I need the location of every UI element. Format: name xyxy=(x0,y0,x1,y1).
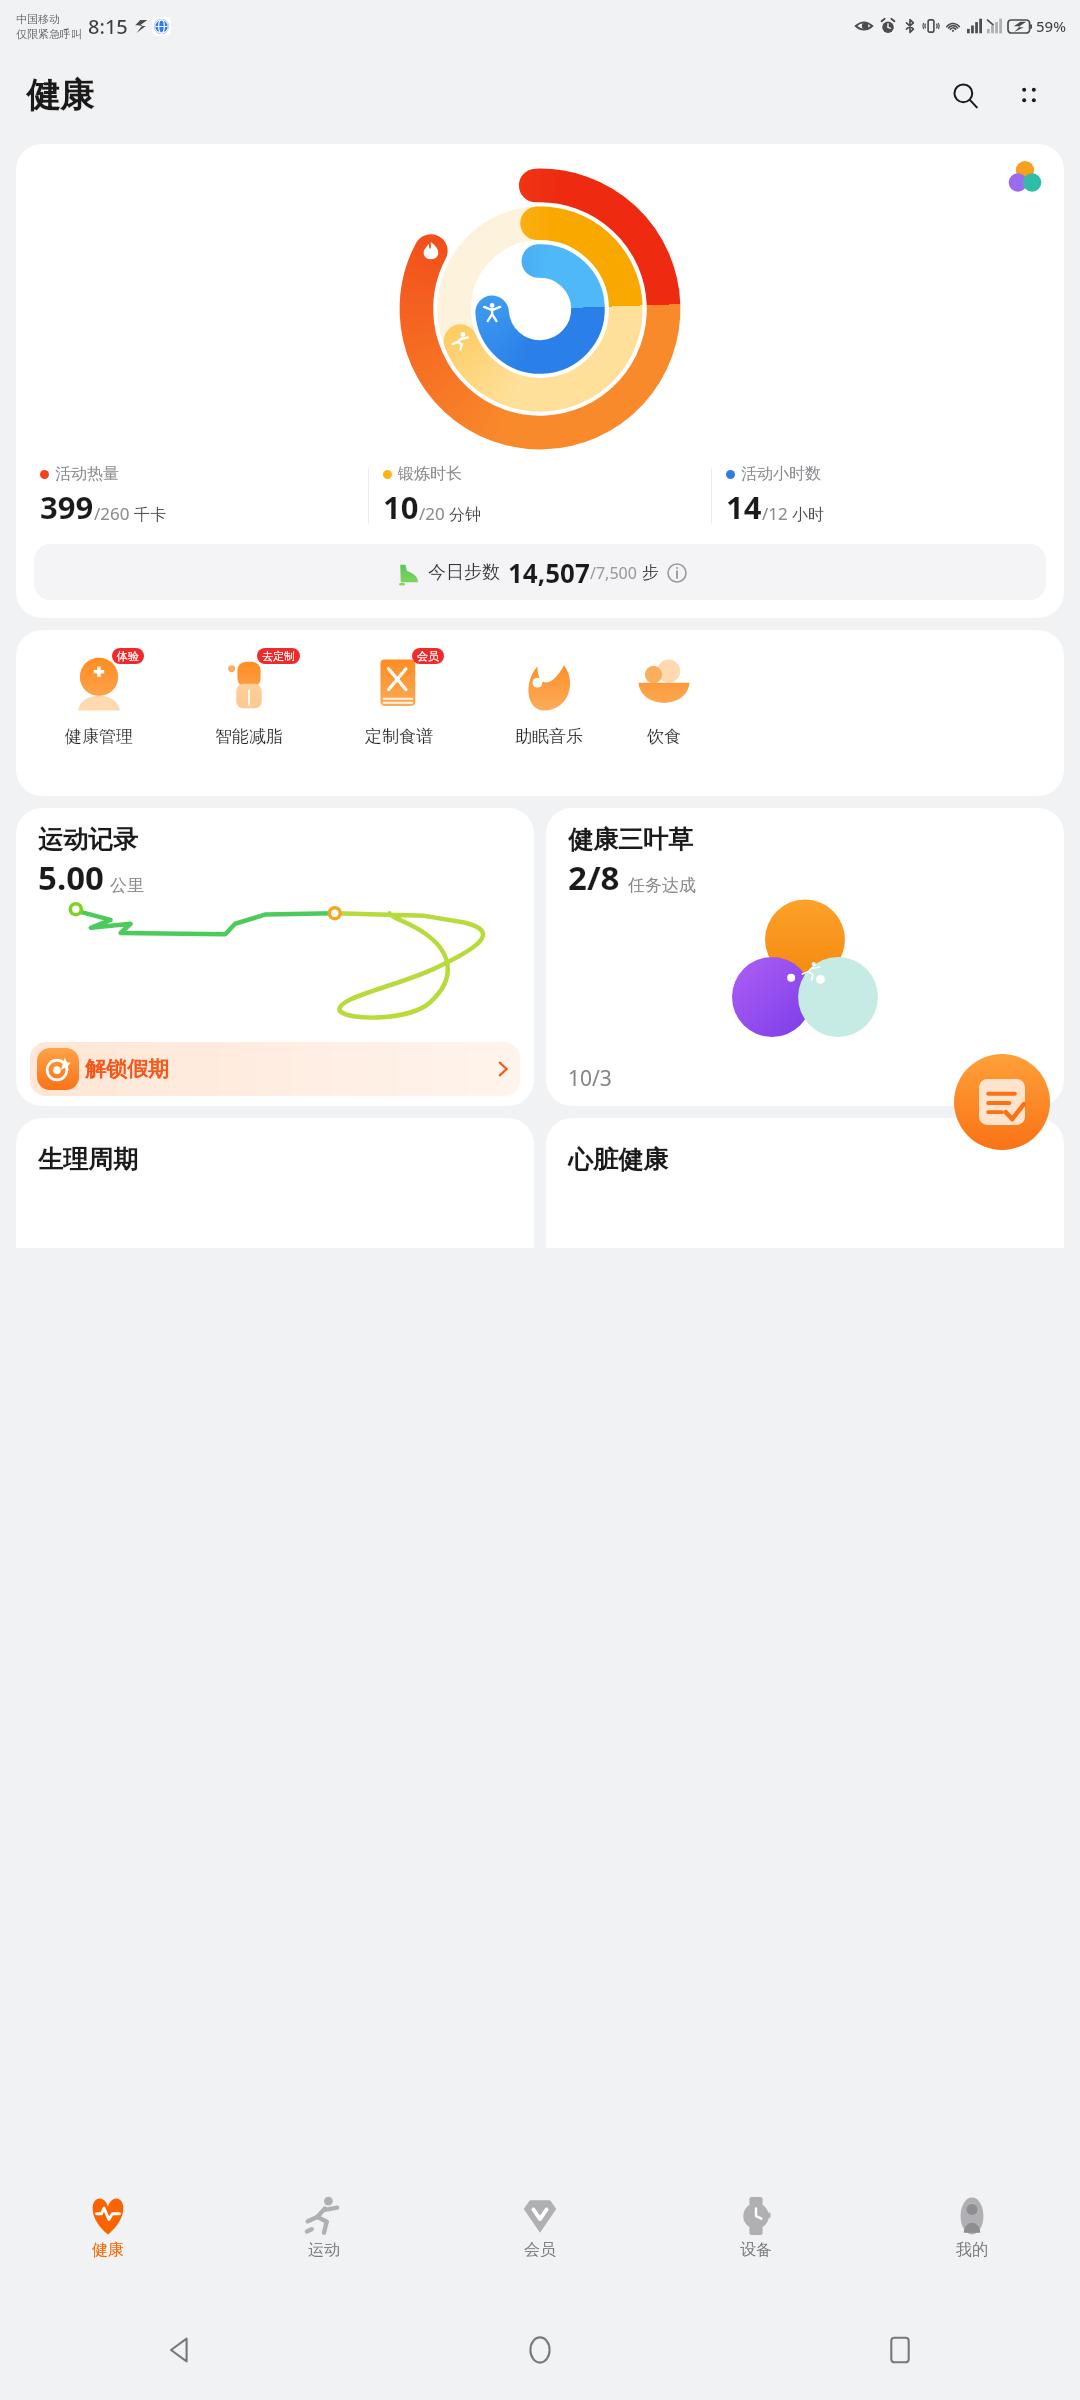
staticText: 分钟 xyxy=(449,505,481,525)
staticText: /12 xyxy=(762,502,788,525)
button[interactable]: 设备 xyxy=(648,2180,864,2300)
staticText: 14 xyxy=(726,486,762,528)
staticText: 中国移动 xyxy=(16,12,60,26)
staticText: 公里 xyxy=(110,875,144,896)
button[interactable]: 今日步数 xyxy=(34,544,1046,600)
button[interactable]: 去定制 xyxy=(174,650,324,747)
staticText: /20 xyxy=(419,502,445,525)
staticText: 活动热量 xyxy=(55,464,119,484)
button[interactable]: 心脏健康 xyxy=(546,1118,1064,1248)
staticText: 2/8 xyxy=(568,855,620,900)
staticText: 去定制 xyxy=(262,649,295,663)
staticText: /7,500 xyxy=(590,562,637,584)
button[interactable]: Search xyxy=(940,70,990,120)
staticText: 任务达成 xyxy=(628,875,696,896)
staticText: 步 xyxy=(642,562,659,583)
staticText: 运动 xyxy=(308,2240,340,2260)
staticText: /260 xyxy=(94,502,130,525)
button[interactable]: 会员 xyxy=(324,650,474,747)
button[interactable]: 解锁假期 xyxy=(30,1042,520,1096)
staticText: 锻炼时长 xyxy=(398,464,462,484)
button[interactable]: 健康 xyxy=(0,2180,216,2300)
staticText: 5.00 xyxy=(38,855,104,900)
staticText: 小时 xyxy=(792,505,824,525)
button[interactable]: 体验 xyxy=(24,650,174,747)
staticText: 仅限紧急呼叫 xyxy=(16,27,82,41)
button[interactable]: 会员 xyxy=(432,2180,648,2300)
staticText: 会员 xyxy=(417,649,439,663)
button[interactable]: 健康三叶草 xyxy=(546,808,1064,1106)
staticText: 千卡 xyxy=(134,505,166,525)
button[interactable]: 饮食 xyxy=(624,650,704,747)
staticText: 健康 xyxy=(26,74,94,117)
staticText: 饮食 xyxy=(647,726,681,747)
staticText: 8:15 xyxy=(88,13,128,40)
button[interactable]: Home xyxy=(360,2300,720,2400)
staticText: 健康三叶草 xyxy=(568,824,693,855)
staticText: 设备 xyxy=(740,2240,772,2260)
staticText: 定制食谱 xyxy=(365,726,433,747)
staticText: 10/3 xyxy=(568,1064,612,1093)
button[interactable]: Recents xyxy=(720,2300,1080,2400)
staticText: 生理周期 xyxy=(38,1144,138,1175)
staticText: 活动小时数 xyxy=(741,464,821,484)
button[interactable]: 助眠音乐 xyxy=(474,650,624,747)
button[interactable]: 运动记录 xyxy=(16,808,534,1106)
staticText: 会员 xyxy=(524,2240,556,2260)
button[interactable]: 我的 xyxy=(864,2180,1080,2300)
staticText: 助眠音乐 xyxy=(515,726,583,747)
button[interactable]: More options xyxy=(1004,70,1054,120)
staticText: 14,507 xyxy=(508,555,590,590)
staticText: 健康管理 xyxy=(65,726,133,747)
staticText: 解锁假期 xyxy=(85,1056,169,1082)
button[interactable]: Health clover xyxy=(986,148,1064,204)
button[interactable]: 生理周期 xyxy=(16,1118,534,1248)
button[interactable]: 运动 xyxy=(216,2180,432,2300)
staticText: 399 xyxy=(40,486,94,528)
staticText: 10 xyxy=(383,486,419,528)
button[interactable]: Back xyxy=(0,2300,360,2400)
staticText: 体验 xyxy=(117,649,139,663)
button[interactable]: Add health record xyxy=(954,1054,1050,1150)
staticText: 心脏健康 xyxy=(568,1144,668,1175)
staticText: 健康 xyxy=(92,2240,124,2260)
staticText: 运动记录 xyxy=(38,824,138,855)
staticText: 智能减脂 xyxy=(215,726,283,747)
button[interactable]: 活动热量 xyxy=(16,144,1064,618)
staticText: 我的 xyxy=(956,2240,988,2260)
staticText: 今日步数 xyxy=(428,561,500,584)
staticText: 59% xyxy=(1036,16,1066,36)
